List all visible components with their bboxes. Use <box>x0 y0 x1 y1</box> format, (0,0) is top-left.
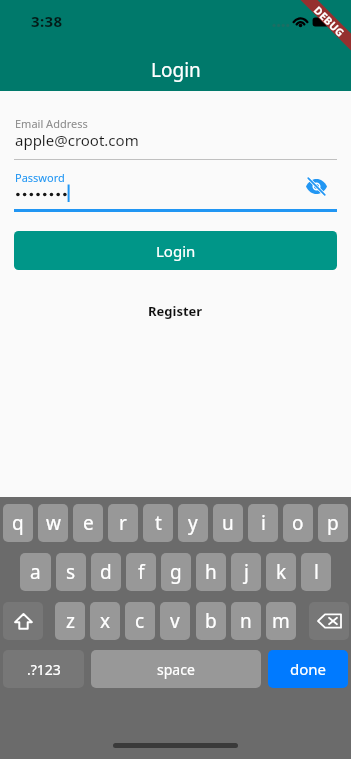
staticText: x <box>100 608 111 634</box>
button[interactable]: x <box>90 602 120 640</box>
staticText: f <box>138 559 145 585</box>
button[interactable]: h <box>196 553 226 591</box>
staticText: w <box>46 510 61 536</box>
staticText: s <box>66 559 76 585</box>
button[interactable]: i <box>248 504 278 542</box>
staticText: n <box>240 608 252 634</box>
button[interactable]: p <box>318 504 348 542</box>
button[interactable]: q <box>3 504 33 542</box>
staticText: k <box>276 559 287 585</box>
staticText: apple@croot.com <box>15 130 139 150</box>
button[interactable]: m <box>266 602 296 640</box>
button[interactable]: j <box>231 553 261 591</box>
button[interactable]: Shift <box>3 602 43 640</box>
button[interactable]: t <box>143 504 173 542</box>
staticText: Password <box>15 170 65 185</box>
button[interactable]: Login <box>14 231 337 270</box>
staticText: l <box>314 559 319 585</box>
button[interactable]: v <box>160 602 190 640</box>
staticText: y <box>188 510 198 536</box>
staticText: q <box>12 510 24 536</box>
staticText: h <box>205 559 217 585</box>
staticText: v <box>170 608 180 634</box>
button[interactable]: k <box>266 553 296 591</box>
button[interactable]: r <box>108 504 138 542</box>
button[interactable]: Backspace <box>309 602 349 640</box>
staticText: t <box>155 510 162 536</box>
button[interactable]: f <box>126 553 156 591</box>
button[interactable]: d <box>91 553 121 591</box>
staticText: j <box>244 559 249 585</box>
button[interactable]: .?123 <box>3 650 84 688</box>
button[interactable]: g <box>161 553 191 591</box>
staticText: u <box>222 510 234 536</box>
button[interactable]: Toggle password visibility <box>297 169 335 203</box>
staticText: a <box>30 559 41 585</box>
button[interactable]: u <box>213 504 243 542</box>
button[interactable]: y <box>178 504 208 542</box>
staticText: r <box>119 510 127 536</box>
staticText: p <box>327 510 339 536</box>
staticText: i <box>261 510 266 536</box>
button[interactable]: c <box>125 602 155 640</box>
button[interactable]: a <box>20 553 51 591</box>
button[interactable]: e <box>73 504 103 542</box>
staticText: DEBUG <box>312 3 348 39</box>
button[interactable]: s <box>56 553 86 591</box>
staticText: e <box>83 510 94 536</box>
staticText: 3:38 <box>31 11 63 31</box>
staticText: c <box>135 608 145 634</box>
button[interactable]: done <box>268 650 348 688</box>
staticText: Login <box>151 57 201 83</box>
button[interactable]: o <box>283 504 313 542</box>
staticText: .?123 <box>27 660 61 679</box>
button[interactable]: b <box>196 602 226 640</box>
staticText: space <box>157 660 195 679</box>
staticText: d <box>100 559 112 585</box>
button[interactable]: z <box>55 602 85 640</box>
button[interactable]: w <box>38 504 68 542</box>
button[interactable]: space <box>91 650 261 688</box>
staticText: b <box>205 608 217 634</box>
staticText: Login <box>156 241 196 261</box>
button[interactable]: Register <box>138 297 213 325</box>
staticText: done <box>290 659 327 679</box>
staticText: Email Address <box>15 116 88 131</box>
staticText: m <box>272 608 290 634</box>
staticText: o <box>292 510 304 536</box>
button[interactable]: n <box>231 602 261 640</box>
button[interactable]: l <box>301 553 331 591</box>
staticText: z <box>66 608 75 634</box>
staticText: Register <box>148 302 203 320</box>
staticText: g <box>170 559 182 585</box>
